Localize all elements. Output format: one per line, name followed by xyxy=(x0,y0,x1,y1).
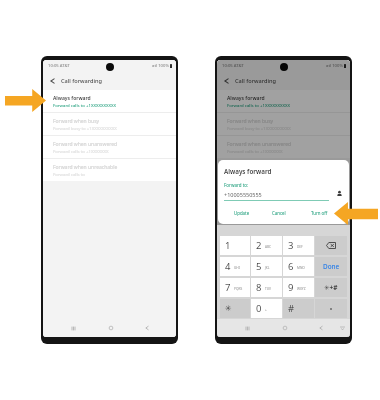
staticText: 2 xyxy=(256,239,262,252)
staticText: GHI xyxy=(234,266,240,270)
button[interactable]: 9 xyxy=(283,278,314,297)
staticText: DEF xyxy=(297,245,303,249)
staticText: Forward busy to +1XXXXXXXXXX xyxy=(53,125,117,131)
button[interactable]: Forward when unanswered xyxy=(43,136,176,158)
staticText: +10005550555 xyxy=(224,191,262,198)
button[interactable]: Forward when busy xyxy=(43,113,176,135)
button[interactable]: Always forward xyxy=(43,90,176,112)
staticText: + xyxy=(265,308,267,312)
staticText: Done xyxy=(323,262,340,271)
staticText: Forward calls to +1XXXXXXXXXX xyxy=(53,102,117,108)
button[interactable] xyxy=(315,236,347,255)
button[interactable]: Back xyxy=(219,71,233,90)
staticText: Call forwarding xyxy=(235,77,276,85)
staticText: atl 100% xyxy=(152,63,169,69)
staticText: 5 xyxy=(256,260,262,273)
staticText: TUV xyxy=(265,287,272,291)
staticText: JKL xyxy=(265,266,270,270)
button[interactable] xyxy=(315,299,347,318)
staticText: 9 xyxy=(288,281,294,294)
staticText: 1 xyxy=(225,239,231,252)
staticText: 4 xyxy=(225,260,231,273)
button[interactable]: Forward when unanswered xyxy=(217,136,350,158)
button[interactable]: 0 xyxy=(251,299,282,318)
button[interactable]: Forward when unreachable xyxy=(43,159,176,181)
staticText: Update xyxy=(234,210,250,216)
button[interactable]: 3 xyxy=(283,236,314,255)
button[interactable]: Always forward xyxy=(217,90,350,112)
staticText: MNO xyxy=(297,266,305,270)
staticText: Cancel xyxy=(272,210,286,216)
staticText: ✳+# xyxy=(324,283,338,292)
staticText: 7 xyxy=(225,281,231,294)
staticText: 10:05 AT&T xyxy=(222,63,244,69)
button[interactable]: # xyxy=(283,299,314,318)
staticText: Always forward xyxy=(53,95,91,102)
staticText: Forward to: xyxy=(224,182,249,188)
staticText: Forward calls to +1XXXXXXX xyxy=(53,148,109,154)
staticText: WXYZ xyxy=(297,287,306,291)
staticText: atl 100% xyxy=(326,63,343,69)
staticText: Forward when unanswered xyxy=(227,141,292,148)
staticText: 6 xyxy=(288,260,294,273)
button[interactable]: 8 xyxy=(251,278,282,297)
button[interactable]: Update xyxy=(230,208,254,218)
button[interactable]: Back xyxy=(139,319,155,337)
staticText: Forward busy to +1XXXXXXXXXX xyxy=(227,125,291,131)
staticText: Forward when busy xyxy=(53,118,100,125)
staticText: Forward when unanswered xyxy=(53,141,118,148)
button[interactable]: 7 xyxy=(220,278,250,297)
button[interactable]: Hide keyboard xyxy=(336,319,348,337)
button[interactable]: Back xyxy=(45,71,59,90)
staticText: Forward calls to +1XXXXXXXXXX xyxy=(227,102,291,108)
staticText: Call forwarding xyxy=(61,77,102,85)
button[interactable]: Recents xyxy=(239,319,255,337)
button[interactable]: 6 xyxy=(283,257,314,276)
staticText: PQRS xyxy=(234,287,243,291)
staticText: Always forward xyxy=(224,167,272,176)
button[interactable]: ✳+# xyxy=(315,278,347,297)
staticText: 8 xyxy=(256,281,262,294)
button[interactable]: ✳ xyxy=(220,299,250,318)
staticText: # xyxy=(288,302,295,315)
button[interactable]: Recents xyxy=(65,319,81,337)
staticText: Forward calls to +1XXXXXXX xyxy=(227,148,283,154)
button[interactable]: 5 xyxy=(251,257,282,276)
button[interactable]: Home xyxy=(103,319,119,337)
button[interactable]: 2 xyxy=(251,236,282,255)
button[interactable]: Done xyxy=(315,257,347,276)
button[interactable]: Turn off xyxy=(307,208,332,218)
staticText: ABC xyxy=(265,245,272,249)
button[interactable]: Home xyxy=(277,319,293,337)
staticText: Always forward xyxy=(227,95,265,102)
staticText: Forward when unreachable xyxy=(53,164,118,171)
button[interactable]: 4 xyxy=(220,257,250,276)
staticText: Forward when busy xyxy=(227,118,274,125)
button[interactable]: Back xyxy=(313,319,329,337)
button[interactable]: Choose contact xyxy=(335,189,343,197)
staticText: 0 xyxy=(256,302,262,315)
button[interactable]: Cancel xyxy=(268,208,290,218)
staticText: Turn off xyxy=(311,210,328,216)
staticText: ✳ xyxy=(225,304,232,313)
staticText: 3 xyxy=(288,239,294,252)
staticText: 10:05 AT&T xyxy=(48,63,70,69)
staticText: Forward calls to xyxy=(53,171,85,177)
button[interactable]: 1 xyxy=(220,236,250,255)
button[interactable]: Forward when busy xyxy=(217,113,350,135)
